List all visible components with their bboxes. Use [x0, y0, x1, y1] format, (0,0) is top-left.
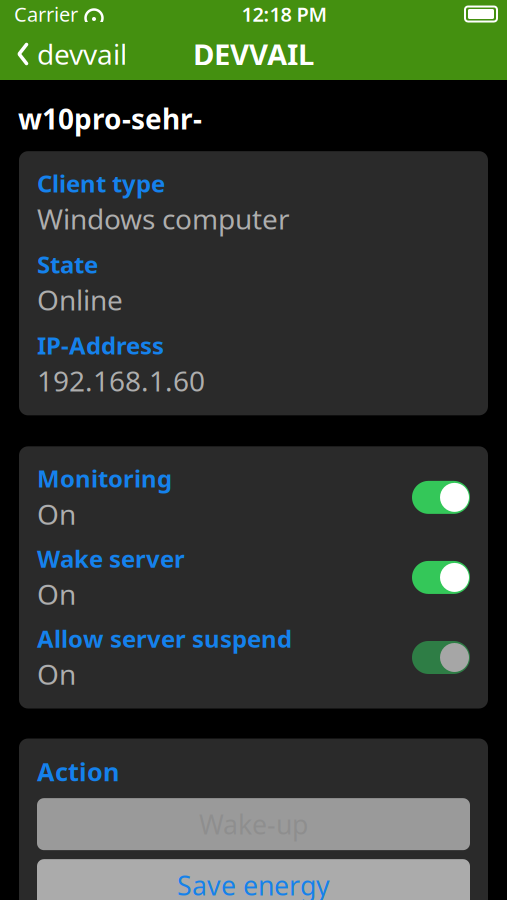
staticText: DEVVAIL — [193, 34, 314, 73]
staticText: Allow server suspend — [37, 622, 292, 654]
staticText: Action — [37, 754, 119, 788]
button[interactable]: Save energy — [37, 859, 470, 900]
staticText: On — [37, 575, 76, 612]
button[interactable]: Allow server suspend — [412, 641, 470, 674]
staticText: Wake server — [37, 542, 185, 574]
staticText: Save energy — [177, 867, 330, 900]
button[interactable]: Monitoring — [412, 481, 470, 514]
staticText: On — [37, 495, 76, 532]
staticText: 12:18 PM — [241, 1, 327, 27]
staticText: devvail — [37, 35, 127, 73]
staticText: Windows computer — [37, 200, 290, 237]
button[interactable]: Wake server — [412, 561, 470, 594]
staticText: w10pro-sehr- — [18, 100, 202, 137]
staticText: On — [37, 655, 76, 692]
staticText: Carrier — [14, 1, 78, 27]
staticText: Wake-up — [199, 806, 308, 842]
staticText: Monitoring — [37, 462, 172, 494]
button[interactable]: Wake-up — [37, 798, 470, 850]
staticText: 192.168.1.60 — [37, 362, 205, 399]
button[interactable]: devvail — [0, 32, 137, 76]
staticText: IP-Address — [37, 329, 164, 361]
staticText: State — [37, 248, 98, 280]
staticText: Online — [37, 281, 123, 318]
staticText: Client type — [37, 167, 165, 199]
